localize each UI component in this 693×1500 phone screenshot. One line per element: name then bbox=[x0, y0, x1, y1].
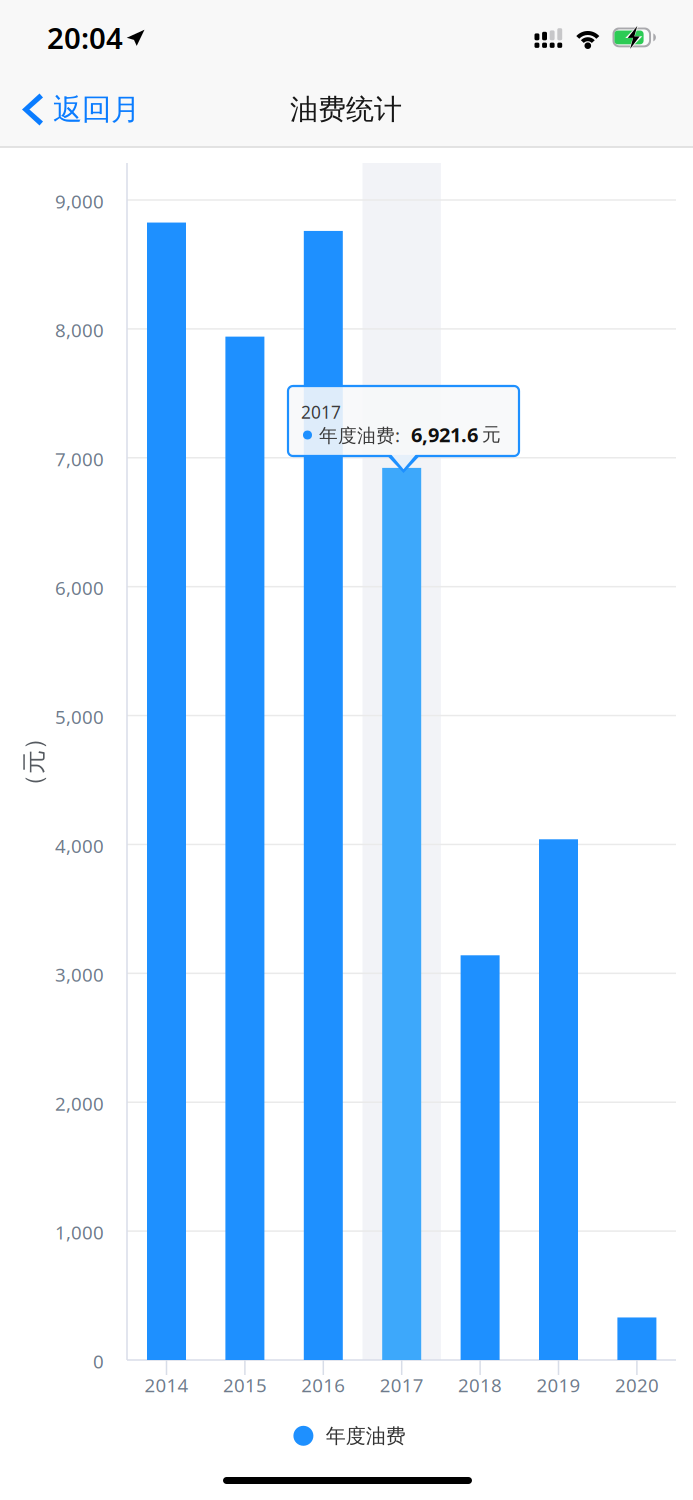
staticText: 0 bbox=[93, 1349, 104, 1374]
staticText: 4,000 bbox=[55, 833, 104, 858]
staticText: 2,000 bbox=[55, 1091, 104, 1116]
staticText: 年度油费 bbox=[326, 1424, 406, 1448]
staticText: 3,000 bbox=[55, 962, 104, 987]
staticText: （元） bbox=[0, 747, 70, 777]
staticText: 2017 bbox=[380, 1373, 424, 1397]
staticText: 2016 bbox=[301, 1373, 345, 1397]
staticText: 1,000 bbox=[55, 1220, 104, 1245]
staticText: 6,000 bbox=[55, 575, 104, 600]
staticText: 元 bbox=[482, 423, 501, 446]
staticText: 6,921.6 bbox=[411, 421, 478, 448]
staticText: 20:04 bbox=[47, 18, 123, 57]
staticText: 5,000 bbox=[55, 704, 104, 729]
staticText: 2019 bbox=[536, 1373, 580, 1397]
staticText: 年度油费: bbox=[319, 423, 400, 447]
staticText: 2017 bbox=[301, 400, 341, 423]
button[interactable]: 返回月 bbox=[11, 75, 163, 143]
staticText: 8,000 bbox=[55, 318, 104, 342]
staticText: 2020 bbox=[615, 1373, 659, 1397]
staticText: 2014 bbox=[144, 1373, 188, 1397]
staticText: 返回月 bbox=[53, 91, 140, 127]
staticText: 2018 bbox=[458, 1373, 502, 1397]
staticText: 2015 bbox=[223, 1373, 267, 1397]
staticText: 9,000 bbox=[55, 189, 104, 214]
staticText: 油费统计 bbox=[290, 92, 402, 127]
staticText: 7,000 bbox=[55, 447, 104, 471]
